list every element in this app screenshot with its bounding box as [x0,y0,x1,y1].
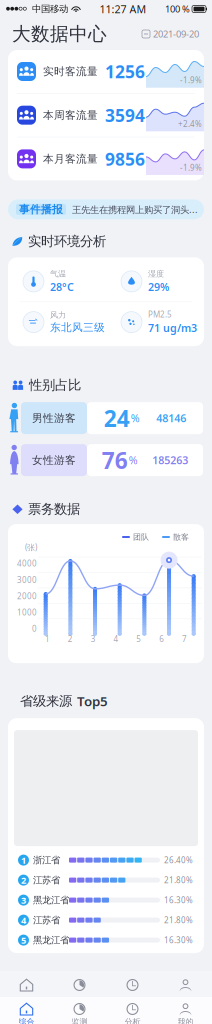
staticText: 16.30% [164,935,193,945]
staticText: 女性游客 [32,453,76,467]
staticText: 100 % [165,3,190,15]
staticText: 26.40% [164,855,193,865]
button[interactable] [0,978,53,992]
staticText: 我的 [177,1017,193,1024]
staticText: 黑龙江省 [33,894,69,906]
staticText: 气温 [50,269,66,279]
staticText: 76 [102,445,128,475]
staticText: % [131,411,140,425]
staticText: -1.9% [180,75,202,85]
button[interactable] [106,978,159,992]
staticText: 0 [32,623,37,634]
staticText: 票务数据 [28,501,80,517]
button[interactable]: 本周客流量 [8,94,204,137]
staticText: 本月客流量 [43,152,98,165]
button[interactable]: 本月客流量 [8,137,204,180]
staticText: 湿度 [148,269,164,279]
staticText: 分析 [124,1017,140,1024]
button[interactable]: 我的 [159,1002,212,1024]
staticText: 中国移动 [32,3,68,15]
staticText: 3594 [105,104,145,127]
staticText: PM2.5 [148,309,172,320]
staticText: 71 ug/m3 [148,321,197,335]
staticText: 9856 [105,147,145,170]
staticText: 185263 [152,453,188,467]
staticText: 综合 [18,1017,34,1024]
staticText: 浙江省 [33,854,60,866]
staticText: 29% [148,280,169,294]
staticText: 24 [104,403,130,433]
button[interactable]: 分析 [106,1002,159,1024]
staticText: 事件播报 [19,203,63,216]
staticText: -1.9% [180,162,202,173]
button[interactable]: 实时客流量 [8,50,204,93]
staticText: 黑龙江省 [33,934,69,946]
staticText: Top5 [77,692,108,710]
staticText: 2021-09-20 [153,28,199,40]
staticText: 3000 [17,574,37,585]
staticText: 性别占比 [29,377,81,393]
button[interactable] [159,978,212,992]
staticText: % [129,453,138,467]
staticText: 1000 [17,607,37,618]
staticText: 省级来源 [20,693,72,709]
staticText: 散客 [173,532,189,542]
staticText: 江苏省 [33,914,60,926]
staticText: 6 [159,634,164,644]
staticText: 本周客流量 [43,109,98,122]
staticText: 实时客流量 [43,65,98,78]
staticText: 王先生在携程网上购买了洞头景区的 [72,203,204,216]
staticText: 风力 [50,310,66,320]
staticText: 7 [182,634,187,644]
staticText: 4 [113,634,118,644]
button[interactable]: 2021-09-20 [142,28,199,40]
staticText: 男性游客 [32,411,76,425]
staticText: 2 [21,874,26,886]
staticText: 11:27 AM [99,2,146,16]
button[interactable] [53,978,106,992]
staticText: 21.80% [164,875,193,885]
staticText: 1256 [105,60,145,83]
staticText: 1 [45,634,50,644]
staticText: 大数据中心 [12,22,107,45]
staticText: 3 [21,894,26,906]
button[interactable]: 综合 [0,1002,53,1024]
staticText: (张) [25,542,37,552]
staticText: 5 [136,634,141,644]
staticText: 实时环境分析 [28,233,106,250]
staticText: 5 [21,934,26,946]
staticText: 28°C [50,280,74,294]
staticText: 团队 [133,532,149,542]
staticText: 4 [21,914,26,926]
staticText: 监测 [71,1017,87,1024]
staticText: 21.80% [164,915,193,925]
staticText: 4000 [17,558,37,569]
staticText: 东北风三级 [50,321,105,334]
staticText: 2000 [17,591,37,601]
staticText: 2 [68,634,73,644]
staticText: 1 [21,854,26,866]
staticText: +2.4% [178,119,202,129]
staticText: 3 [91,634,96,644]
staticText: 江苏省 [33,874,60,886]
staticText: 16.30% [164,895,193,905]
button[interactable]: 监测 [53,1002,106,1024]
staticText: 48146 [156,411,186,425]
